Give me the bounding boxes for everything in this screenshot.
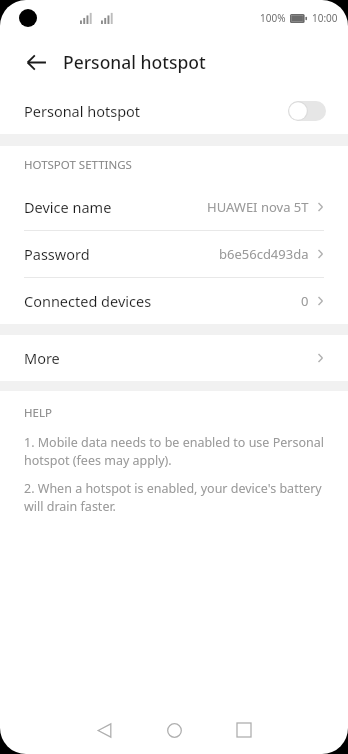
staticText: Personal hotspot <box>63 50 206 74</box>
button[interactable]: Back <box>14 40 58 84</box>
button[interactable]: Back <box>75 706 133 754</box>
staticText: 0 <box>301 292 309 310</box>
button[interactable]: Password <box>0 231 348 277</box>
staticText: Connected devices <box>24 291 152 311</box>
staticText: b6e56cd493da <box>219 245 309 263</box>
staticText: 2. When a hotspot is enabled, your devic… <box>24 480 324 515</box>
button[interactable]: Recent apps <box>215 706 273 754</box>
staticText: 100% <box>260 11 286 25</box>
button[interactable]: Personal hotspot <box>0 88 348 134</box>
staticText: More <box>24 348 60 368</box>
staticText: HUAWEI nova 5T <box>207 198 309 216</box>
staticText: 1. Mobile data needs to be enabled to us… <box>24 434 324 469</box>
button[interactable]: More <box>0 335 348 381</box>
staticText: Password <box>24 244 90 264</box>
staticText: Personal hotspot <box>24 101 141 121</box>
button[interactable]: Connected devices <box>0 278 348 324</box>
staticText: HOTSPOT SETTINGS <box>24 157 132 173</box>
staticText: Device name <box>24 197 112 217</box>
button[interactable]: Device name <box>0 184 348 230</box>
staticText: HELP <box>24 405 52 421</box>
button[interactable]: Home <box>145 706 203 754</box>
staticText: 10:00 <box>312 11 338 25</box>
